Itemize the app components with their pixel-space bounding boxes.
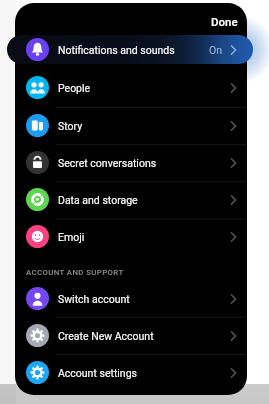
staticText: Account settings bbox=[58, 367, 137, 379]
staticText: Secret conversations bbox=[58, 157, 157, 169]
staticText: Switch account bbox=[58, 293, 130, 305]
button[interactable]: Data and storage bbox=[15, 181, 247, 218]
staticText: ACCOUNT AND SUPPORT bbox=[26, 268, 124, 277]
staticText: Create New Account bbox=[58, 330, 154, 342]
button[interactable]: Done bbox=[208, 13, 241, 30]
staticText: Emoji bbox=[58, 231, 85, 243]
button[interactable]: Account settings bbox=[15, 354, 247, 391]
button[interactable]: Notifications and sounds bbox=[15, 31, 247, 68]
button[interactable]: Create New Account bbox=[15, 317, 247, 354]
button[interactable]: People bbox=[15, 69, 247, 106]
staticText: People bbox=[58, 82, 91, 94]
staticText: Done bbox=[211, 15, 238, 28]
staticText: Data and storage bbox=[58, 194, 138, 206]
staticText: Notifications and sounds bbox=[58, 44, 175, 56]
button[interactable]: Emoji bbox=[15, 218, 247, 255]
button[interactable]: Switch account bbox=[15, 280, 247, 317]
button[interactable]: Story bbox=[15, 107, 247, 144]
staticText: On bbox=[209, 44, 223, 56]
button[interactable]: Secret conversations bbox=[15, 144, 247, 181]
staticText: Story bbox=[58, 120, 83, 132]
